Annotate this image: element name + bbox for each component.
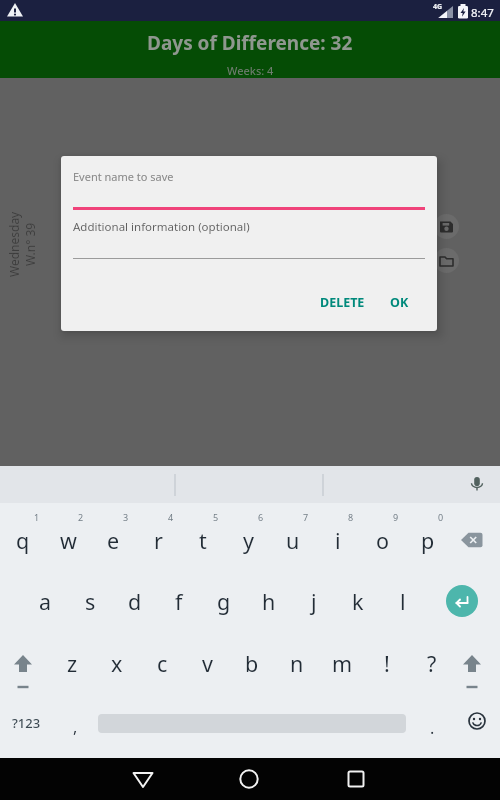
staticText: Event name to save xyxy=(73,169,174,184)
button[interactable]: g xyxy=(202,581,246,621)
staticText: r xyxy=(154,526,163,555)
button[interactable]: z xyxy=(50,643,94,683)
button[interactable] xyxy=(434,248,459,273)
button[interactable]: k xyxy=(336,581,380,621)
button[interactable] xyxy=(455,704,499,742)
button[interactable]: h xyxy=(247,581,291,621)
staticText: t xyxy=(199,526,207,555)
staticText: ! xyxy=(384,649,390,678)
button[interactable]: d xyxy=(113,581,157,621)
staticText: b xyxy=(245,649,259,678)
staticText: h xyxy=(262,587,276,616)
staticText: n xyxy=(290,649,304,678)
button[interactable]: j xyxy=(292,581,336,621)
staticText: g xyxy=(217,587,231,616)
button[interactable] xyxy=(434,214,459,239)
staticText: f xyxy=(175,587,183,616)
staticText: 7 xyxy=(303,511,309,523)
button[interactable]: n xyxy=(275,643,319,683)
staticText: i xyxy=(335,526,341,555)
staticText: ? xyxy=(427,649,437,678)
staticText: a xyxy=(39,587,52,616)
button[interactable] xyxy=(1,646,45,694)
button[interactable]: o xyxy=(361,520,405,560)
staticText: . xyxy=(430,717,435,739)
staticText: 5 xyxy=(213,511,219,523)
button[interactable]: ? xyxy=(410,643,454,683)
staticText: p xyxy=(421,526,435,555)
staticText: OK xyxy=(390,294,409,311)
staticText: s xyxy=(85,587,96,616)
button[interactable]: v xyxy=(185,643,229,683)
button[interactable]: m xyxy=(320,643,364,683)
button[interactable]: , xyxy=(53,707,97,747)
staticText: 8:47 xyxy=(471,5,494,21)
staticText: 4 xyxy=(168,511,174,523)
staticText: d xyxy=(128,587,142,616)
button[interactable] xyxy=(450,520,494,560)
button[interactable]: x xyxy=(95,643,139,683)
staticText: 0 xyxy=(438,511,444,523)
staticText: 4G xyxy=(433,2,443,12)
staticText: 3 xyxy=(123,511,129,523)
button[interactable] xyxy=(119,758,167,800)
staticText: v xyxy=(202,649,213,678)
staticText: l xyxy=(400,587,406,616)
staticText: y xyxy=(243,526,254,555)
staticText: e xyxy=(107,526,120,555)
staticText: q xyxy=(16,526,30,555)
staticText: u xyxy=(286,526,300,555)
button[interactable] xyxy=(332,758,380,800)
staticText: k xyxy=(352,587,364,616)
button[interactable]: f xyxy=(157,581,201,621)
button[interactable]: b xyxy=(230,643,274,683)
button[interactable]: ! xyxy=(365,643,409,683)
staticText: DELETE xyxy=(320,294,365,311)
button[interactable]: l xyxy=(381,581,425,621)
button[interactable]: t xyxy=(181,520,225,560)
staticText: Wednesday xyxy=(6,211,22,277)
staticText: x xyxy=(111,649,123,678)
button[interactable]: c xyxy=(140,643,184,683)
button[interactable]: i xyxy=(316,520,360,560)
button[interactable]: u xyxy=(271,520,315,560)
button[interactable]: e xyxy=(91,520,135,560)
staticText: j xyxy=(311,587,317,616)
button[interactable]: y xyxy=(226,520,270,560)
staticText: Weeks: 4 xyxy=(227,63,274,78)
staticText: Days of Difference: 32 xyxy=(147,30,353,56)
button[interactable] xyxy=(450,646,494,694)
staticText: c xyxy=(157,649,168,678)
button[interactable]: OK xyxy=(369,282,429,322)
button[interactable]: DELETE xyxy=(302,282,382,322)
staticText: w xyxy=(60,526,77,555)
staticText: 9 xyxy=(393,511,399,523)
button[interactable]: r xyxy=(136,520,180,560)
staticText: ?123 xyxy=(12,714,41,732)
button[interactable]: p xyxy=(406,520,450,560)
staticText: W.n° 39 xyxy=(22,222,38,266)
staticText: 2 xyxy=(78,511,84,523)
staticText: 1 xyxy=(34,511,40,523)
button[interactable]: w xyxy=(46,520,90,560)
button[interactable]: . xyxy=(410,708,454,748)
staticText: m xyxy=(332,649,353,678)
button[interactable]: a xyxy=(23,581,67,621)
staticText: Additional information (optional) xyxy=(73,219,250,235)
button[interactable]: s xyxy=(68,581,112,621)
button[interactable]: ?123 xyxy=(4,704,48,742)
staticText: 8 xyxy=(348,511,354,523)
staticText: z xyxy=(67,649,78,678)
staticText: 6 xyxy=(258,511,264,523)
button[interactable] xyxy=(446,585,478,617)
staticText: o xyxy=(376,526,390,555)
button[interactable]: q xyxy=(1,520,45,560)
button[interactable] xyxy=(225,758,273,800)
staticText: , xyxy=(73,716,78,738)
